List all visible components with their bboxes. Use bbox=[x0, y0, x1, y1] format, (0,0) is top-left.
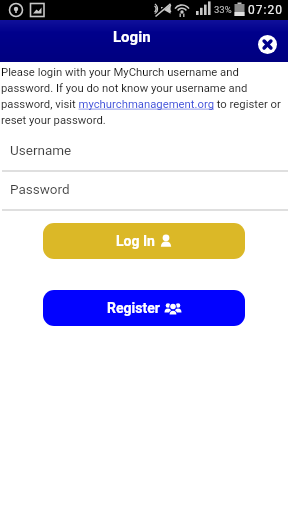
staticText: Log In bbox=[116, 233, 155, 249]
staticText: reset your password. bbox=[1, 114, 106, 127]
button[interactable] bbox=[258, 35, 277, 54]
staticText: Username bbox=[10, 142, 72, 158]
staticText: Register bbox=[107, 300, 160, 316]
button[interactable]: Username bbox=[0, 138, 288, 172]
button[interactable]: Password bbox=[0, 177, 288, 211]
staticText: password. If you do not know your userna… bbox=[1, 82, 248, 95]
staticText: 07:20 bbox=[248, 3, 283, 17]
staticText: Password bbox=[10, 181, 70, 197]
button[interactable]: Log In bbox=[43, 223, 245, 259]
staticText: Please login with your MyChurch username… bbox=[1, 66, 239, 79]
staticText: 33% bbox=[214, 4, 232, 15]
staticText: Login bbox=[113, 28, 151, 46]
button[interactable]: Register bbox=[43, 290, 245, 326]
staticText: password, visit mychurchmanagement.org t… bbox=[1, 98, 281, 111]
